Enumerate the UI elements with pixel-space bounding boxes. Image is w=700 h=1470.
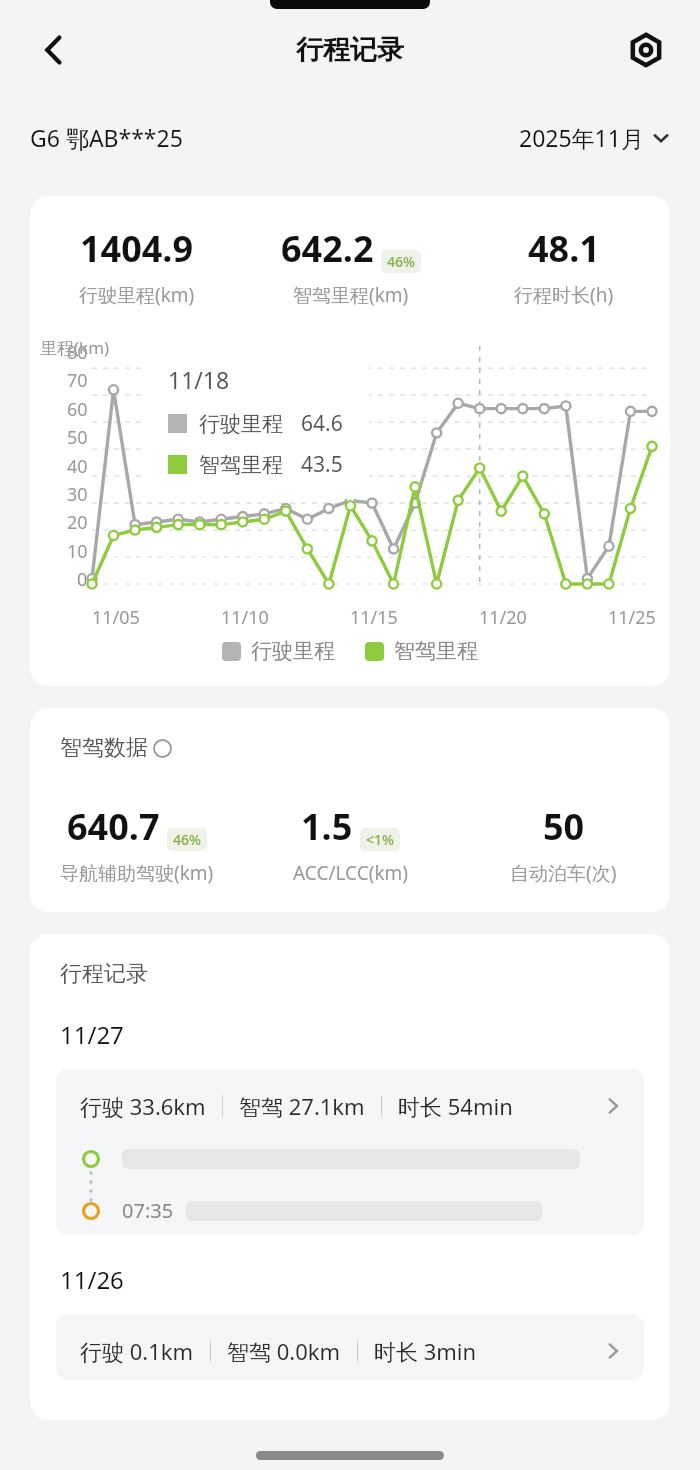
staticText: 30	[67, 482, 88, 507]
button[interactable]: Settings	[618, 22, 674, 78]
staticText: G6 鄂AB***25	[30, 122, 183, 153]
staticText: 自动泊车(次)	[510, 860, 617, 886]
staticText: 46%	[387, 252, 415, 271]
button[interactable]: 行驶里程	[222, 638, 335, 664]
staticText: 60	[67, 397, 88, 422]
button[interactable]: 2025年11月	[519, 122, 670, 153]
staticText: 行驶里程	[251, 638, 335, 664]
staticText: 11/20	[479, 605, 527, 630]
staticText: 11/25	[608, 605, 656, 630]
staticText: 智驾里程	[394, 638, 478, 664]
staticText: 46%	[173, 830, 201, 849]
staticText: 行驶里程(km)	[79, 282, 195, 308]
staticText: 智驾数据	[60, 734, 148, 762]
staticText: 642.2	[281, 224, 374, 273]
staticText: 行程记录	[296, 33, 404, 67]
staticText: ACC/LCC(km)	[293, 860, 408, 886]
staticText: 行程记录	[60, 960, 148, 988]
staticText: 11/27	[60, 1018, 124, 1051]
staticText: 11/05	[92, 605, 140, 630]
staticText: 40	[67, 454, 88, 479]
staticText: 50	[67, 425, 88, 450]
button[interactable]: 行驶 33.6km	[56, 1069, 644, 1235]
staticText: 43.5	[301, 450, 343, 479]
staticText: 20	[67, 510, 88, 535]
staticText: 10	[67, 539, 88, 564]
staticText: 1404.9	[80, 224, 194, 273]
staticText: 智驾 27.1km	[239, 1091, 365, 1121]
staticText: 行驶 33.6km	[80, 1091, 206, 1121]
staticText: 智驾里程	[199, 452, 283, 478]
staticText: <1%	[366, 830, 394, 849]
staticText: 智驾 0.0km	[227, 1336, 341, 1366]
staticText: 640.7	[67, 802, 160, 851]
staticText: 智驾里程(km)	[293, 282, 409, 308]
staticText: 时长 54min	[398, 1091, 513, 1121]
staticText: 行程时长(h)	[514, 282, 614, 308]
staticText: 70	[67, 368, 88, 393]
staticText: 07:35	[122, 1197, 174, 1224]
staticText: 行驶 0.1km	[80, 1336, 194, 1366]
staticText: 0	[77, 567, 88, 592]
staticText: 50	[543, 802, 585, 851]
staticText: 11/18	[168, 364, 230, 395]
staticText: 2025年11月	[519, 122, 644, 153]
staticText: 时长 3min	[374, 1336, 477, 1366]
staticText: 48.1	[528, 224, 600, 273]
button[interactable]: Back	[26, 22, 82, 78]
staticText: 1.5	[301, 802, 353, 851]
staticText: 80	[67, 340, 88, 365]
staticText: 行驶里程	[199, 411, 283, 437]
staticText: 11/26	[60, 1263, 124, 1296]
staticText: 11/10	[221, 605, 269, 630]
button[interactable]: 行驶 0.1km	[56, 1314, 644, 1380]
staticText: 导航辅助驾驶(km)	[60, 860, 214, 886]
button[interactable]: 智驾里程	[365, 638, 478, 664]
staticText: 里程(km)	[40, 336, 110, 359]
button[interactable]: 智驾数据	[60, 734, 172, 762]
staticText: 64.6	[301, 409, 343, 438]
staticText: 11/15	[350, 605, 398, 630]
